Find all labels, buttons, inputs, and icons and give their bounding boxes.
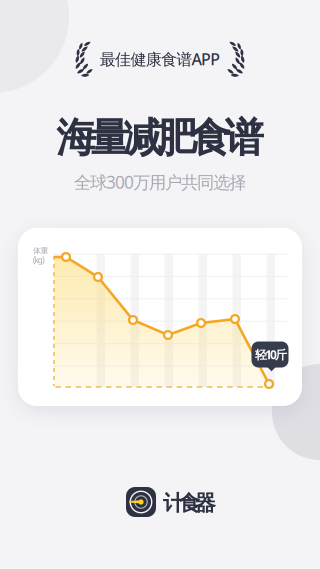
staticText: 轻10斤: [255, 346, 287, 362]
staticText: (kg): [33, 255, 44, 265]
staticText: 计食器: [163, 490, 216, 516]
staticText: 全球300万用户共同选择: [74, 170, 246, 193]
staticText: 最佳健康食谱APP: [100, 48, 220, 70]
staticText: 体重: [33, 246, 48, 256]
staticText: 海量减肥食谱: [56, 113, 264, 162]
button[interactable]: 计食器: [0, 484, 320, 520]
